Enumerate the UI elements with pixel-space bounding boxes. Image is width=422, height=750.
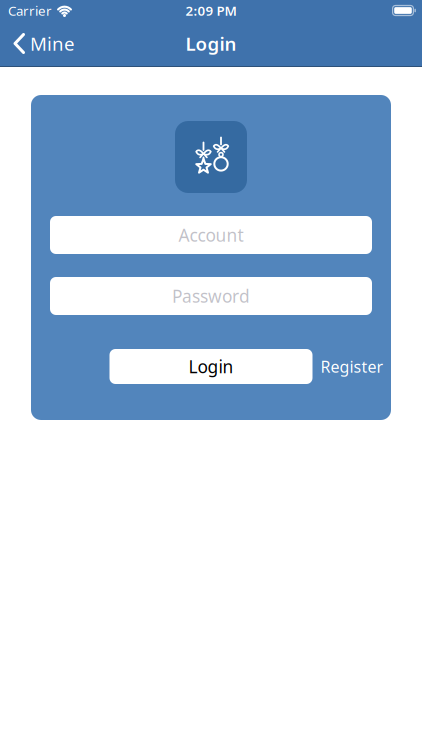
button[interactable]: Register — [313, 349, 391, 384]
button[interactable]: Back to Mine — [0, 21, 75, 66]
staticText: Password — [172, 284, 250, 307]
button[interactable]: Login — [109, 349, 312, 384]
button[interactable]: Password — [50, 277, 372, 315]
staticText: Carrier — [8, 2, 52, 19]
staticText: Register — [320, 356, 383, 377]
staticText: Mine — [30, 31, 75, 56]
button[interactable]: Account — [50, 216, 372, 254]
staticText: 2:09 PM — [185, 2, 236, 19]
staticText: Account — [178, 223, 243, 246]
staticText: Login — [188, 355, 233, 378]
staticText: Login — [185, 31, 236, 56]
